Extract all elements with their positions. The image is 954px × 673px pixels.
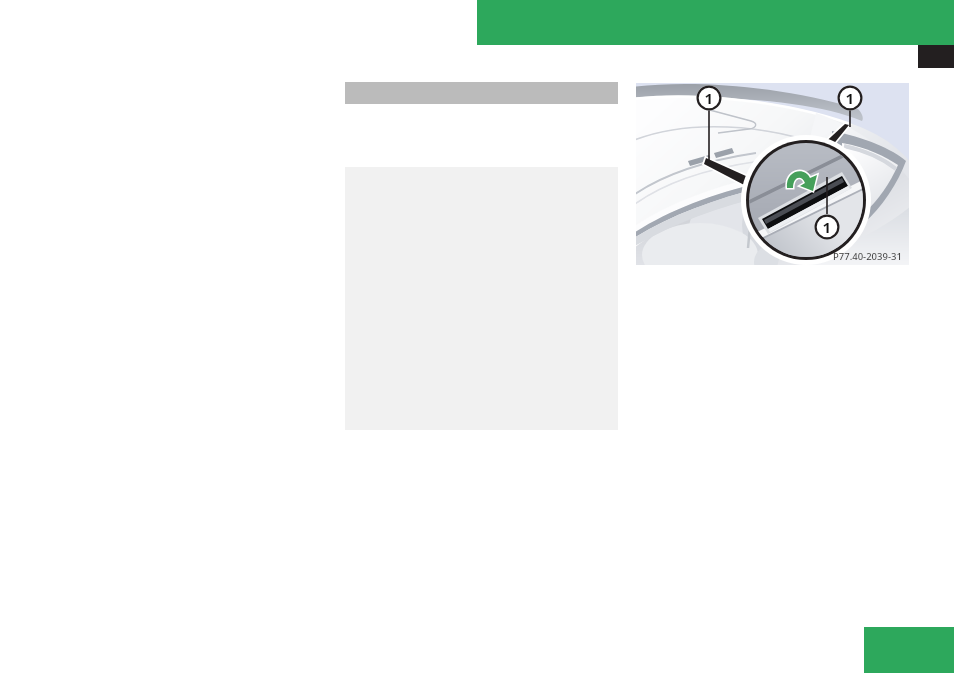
button[interactable]: Illustration: roof antenna location <box>636 83 909 265</box>
